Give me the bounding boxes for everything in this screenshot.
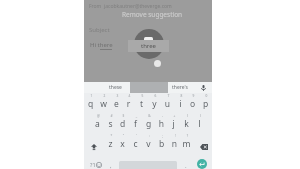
staticText: b [155,138,168,150]
staticText: f [129,118,142,130]
button[interactable]: Remove suggestion [105,10,200,19]
staticText: o [186,98,199,110]
staticText: jacobkautner@theverge.com [104,3,172,10]
staticText: # [105,114,118,118]
staticText: Subject [89,26,110,34]
button[interactable]: * [104,135,117,155]
staticText: m [180,138,193,150]
staticText: _ [130,114,143,118]
button[interactable]: + [167,115,180,135]
button[interactable]: three [128,40,169,52]
button[interactable]: ) [193,115,206,135]
staticText: 6 [149,94,162,98]
staticText: ? [181,134,194,138]
staticText: there's [172,84,188,91]
staticText: 0 [200,94,213,98]
staticText: d [116,118,129,130]
staticText: x [116,138,129,150]
staticText: three [141,42,157,50]
staticText: " [117,134,130,138]
staticText: @ [92,114,105,118]
button[interactable]: 2 [97,95,110,115]
staticText: i [174,98,187,110]
button[interactable]: 9 [186,95,199,115]
staticText: k [180,118,193,130]
staticText: 7 [162,94,175,98]
button[interactable]: 7 [161,95,174,115]
staticText: q [84,98,97,110]
button[interactable]: # [104,115,117,135]
staticText: From [89,3,102,10]
button[interactable]: : [142,135,155,155]
staticText: r [122,98,135,110]
staticText: , [110,162,112,169]
button[interactable]: " [116,135,129,155]
staticText: 8 [175,94,188,98]
button[interactable]: there's [168,82,192,93]
staticText: e [110,98,123,110]
staticText: u [161,98,174,110]
button[interactable]: $ [116,115,129,135]
staticText: z [104,138,117,150]
staticText: - [156,114,169,118]
button[interactable]: Shift [86,135,101,155]
button[interactable]: . [180,156,191,169]
button[interactable]: _ [129,115,142,135]
staticText: a [91,118,104,130]
staticText: y [148,98,161,110]
staticText: ( [181,114,194,118]
staticText: $ [117,114,130,118]
staticText: 9 [187,94,200,98]
staticText: l [193,118,206,130]
button[interactable]: , [105,156,116,169]
button[interactable]: @ [91,115,104,135]
button[interactable]: Symbols and emoji [85,156,106,169]
staticText: ) [194,114,207,118]
staticText: ?1 [90,161,96,168]
button[interactable]: - [155,115,168,135]
button[interactable]: ! [168,135,181,155]
staticText: c [129,138,142,150]
staticText: h [155,118,168,130]
button[interactable]: ? [180,135,193,155]
button[interactable]: Backspace [195,135,211,155]
button[interactable]: 4 [122,95,135,115]
button[interactable]: ( [180,115,193,135]
button[interactable]: & [142,115,155,135]
staticText: these [109,84,122,91]
button[interactable]: 3 [110,95,123,115]
button[interactable]: 5 [135,95,148,115]
staticText: 4 [123,94,136,98]
staticText: + [168,114,181,118]
button[interactable]: ; [155,135,168,155]
staticText: Hi there [90,41,113,49]
staticText: 3 [111,94,124,98]
staticText: n [168,138,181,150]
staticText: ; [156,134,169,138]
staticText: s [104,118,117,130]
staticText: . [185,162,187,169]
staticText: 5 [136,94,149,98]
staticText: : [143,134,156,138]
button[interactable]: Enter [197,159,207,169]
staticText: * [105,134,118,138]
button[interactable]: these [97,82,133,93]
staticText: ! [169,134,182,138]
button[interactable]: 0 [199,95,212,115]
staticText: v [142,138,155,150]
staticText: 1 [85,94,98,98]
staticText: Remove suggestion [122,10,183,19]
staticText: 2 [98,94,111,98]
button[interactable]: Voice input [195,82,211,93]
staticText: g [142,118,155,130]
staticText: p [199,98,212,110]
staticText: t [135,98,148,110]
button[interactable]: 6 [148,95,161,115]
button[interactable]: 1 [84,95,97,115]
staticText: & [143,114,156,118]
button[interactable]: 8 [174,95,187,115]
button[interactable]: ' [129,135,142,155]
staticText: j [167,118,180,130]
